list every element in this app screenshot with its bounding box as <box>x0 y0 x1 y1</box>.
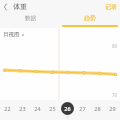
button[interactable]: Back <box>0 1 12 13</box>
button[interactable]: 27 <box>75 100 90 116</box>
staticText: 70 <box>112 92 118 98</box>
staticText: 数据 <box>25 15 36 22</box>
button[interactable]: 趋势 <box>60 13 120 28</box>
button[interactable]: 日视图 <box>3 31 25 38</box>
button[interactable]: 25 <box>45 100 60 116</box>
staticText: 29 <box>109 105 116 112</box>
button[interactable]: 28 <box>90 100 105 116</box>
staticText: 25 <box>49 105 56 112</box>
staticText: 趋势 <box>84 14 96 22</box>
button[interactable]: 记录 <box>105 3 120 11</box>
button[interactable]: 26 <box>60 100 75 116</box>
button[interactable]: 数据 <box>0 13 60 28</box>
button[interactable]: 29 <box>105 100 120 116</box>
button[interactable]: 24 <box>30 100 45 116</box>
staticText: 22 <box>4 105 11 112</box>
staticText: 体重 <box>13 2 27 11</box>
staticText: 80 <box>112 43 118 49</box>
staticText: 28 <box>94 105 101 112</box>
staticText: 23 <box>19 105 26 112</box>
staticText: 27 <box>79 105 86 112</box>
staticText: 26 <box>64 105 71 112</box>
button[interactable]: 23 <box>15 100 30 116</box>
button[interactable]: 22 <box>0 100 15 116</box>
staticText: 日视图 <box>3 31 20 38</box>
staticText: 24 <box>34 105 41 112</box>
